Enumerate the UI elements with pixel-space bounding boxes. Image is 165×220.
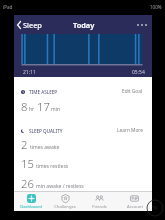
button[interactable]: Edit Goal (122, 88, 143, 95)
staticText: min (51, 106, 61, 113)
staticText: Friends (92, 204, 107, 210)
staticText: iPad (3, 4, 13, 10)
staticText: times awake (30, 144, 60, 151)
staticText: Dashboard (20, 204, 42, 210)
button[interactable]: Account (117, 194, 152, 210)
staticText: TK (152, 205, 158, 212)
staticText: times restless (36, 163, 69, 170)
staticText: 2 (21, 137, 28, 152)
button[interactable]: Challenges (48, 194, 82, 210)
button[interactable]: Friends (82, 194, 117, 210)
staticText: Sleep (23, 20, 42, 30)
staticText: SLEEP QUALITY (29, 128, 63, 134)
staticText: TIME ASLEEP (29, 89, 58, 95)
button[interactable]: Dashboard (14, 194, 48, 210)
staticText: min awake / restless (36, 183, 84, 190)
staticText: 17 (37, 99, 50, 114)
staticText: 21:11 (23, 69, 36, 76)
staticText: 26 (21, 176, 34, 191)
staticText: Today (73, 20, 95, 30)
staticText: 8 (21, 99, 28, 114)
staticText: Account (127, 204, 143, 210)
button[interactable]: Sleep (17, 20, 42, 30)
staticText: 15 (21, 156, 34, 171)
staticText: Challenges (54, 204, 76, 210)
staticText: hr (29, 106, 35, 113)
button[interactable]: Learn More (117, 127, 143, 134)
staticText: 100% (150, 4, 162, 10)
staticText: 05:54 (132, 69, 145, 76)
button[interactable]: More options (137, 24, 147, 26)
